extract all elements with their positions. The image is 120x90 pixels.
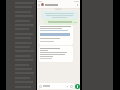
button[interactable] [41,11,78,19]
button[interactable]: Attach [38,83,74,89]
button[interactable] [44,19,78,25]
button[interactable]: Back [37,2,80,7]
button[interactable]: Attach [66,85,69,88]
button[interactable] [39,25,73,45]
button[interactable]: Voice message [75,84,80,89]
button[interactable]: More options [75,3,79,7]
button[interactable] [39,46,73,62]
button[interactable]: Camera [70,85,73,88]
